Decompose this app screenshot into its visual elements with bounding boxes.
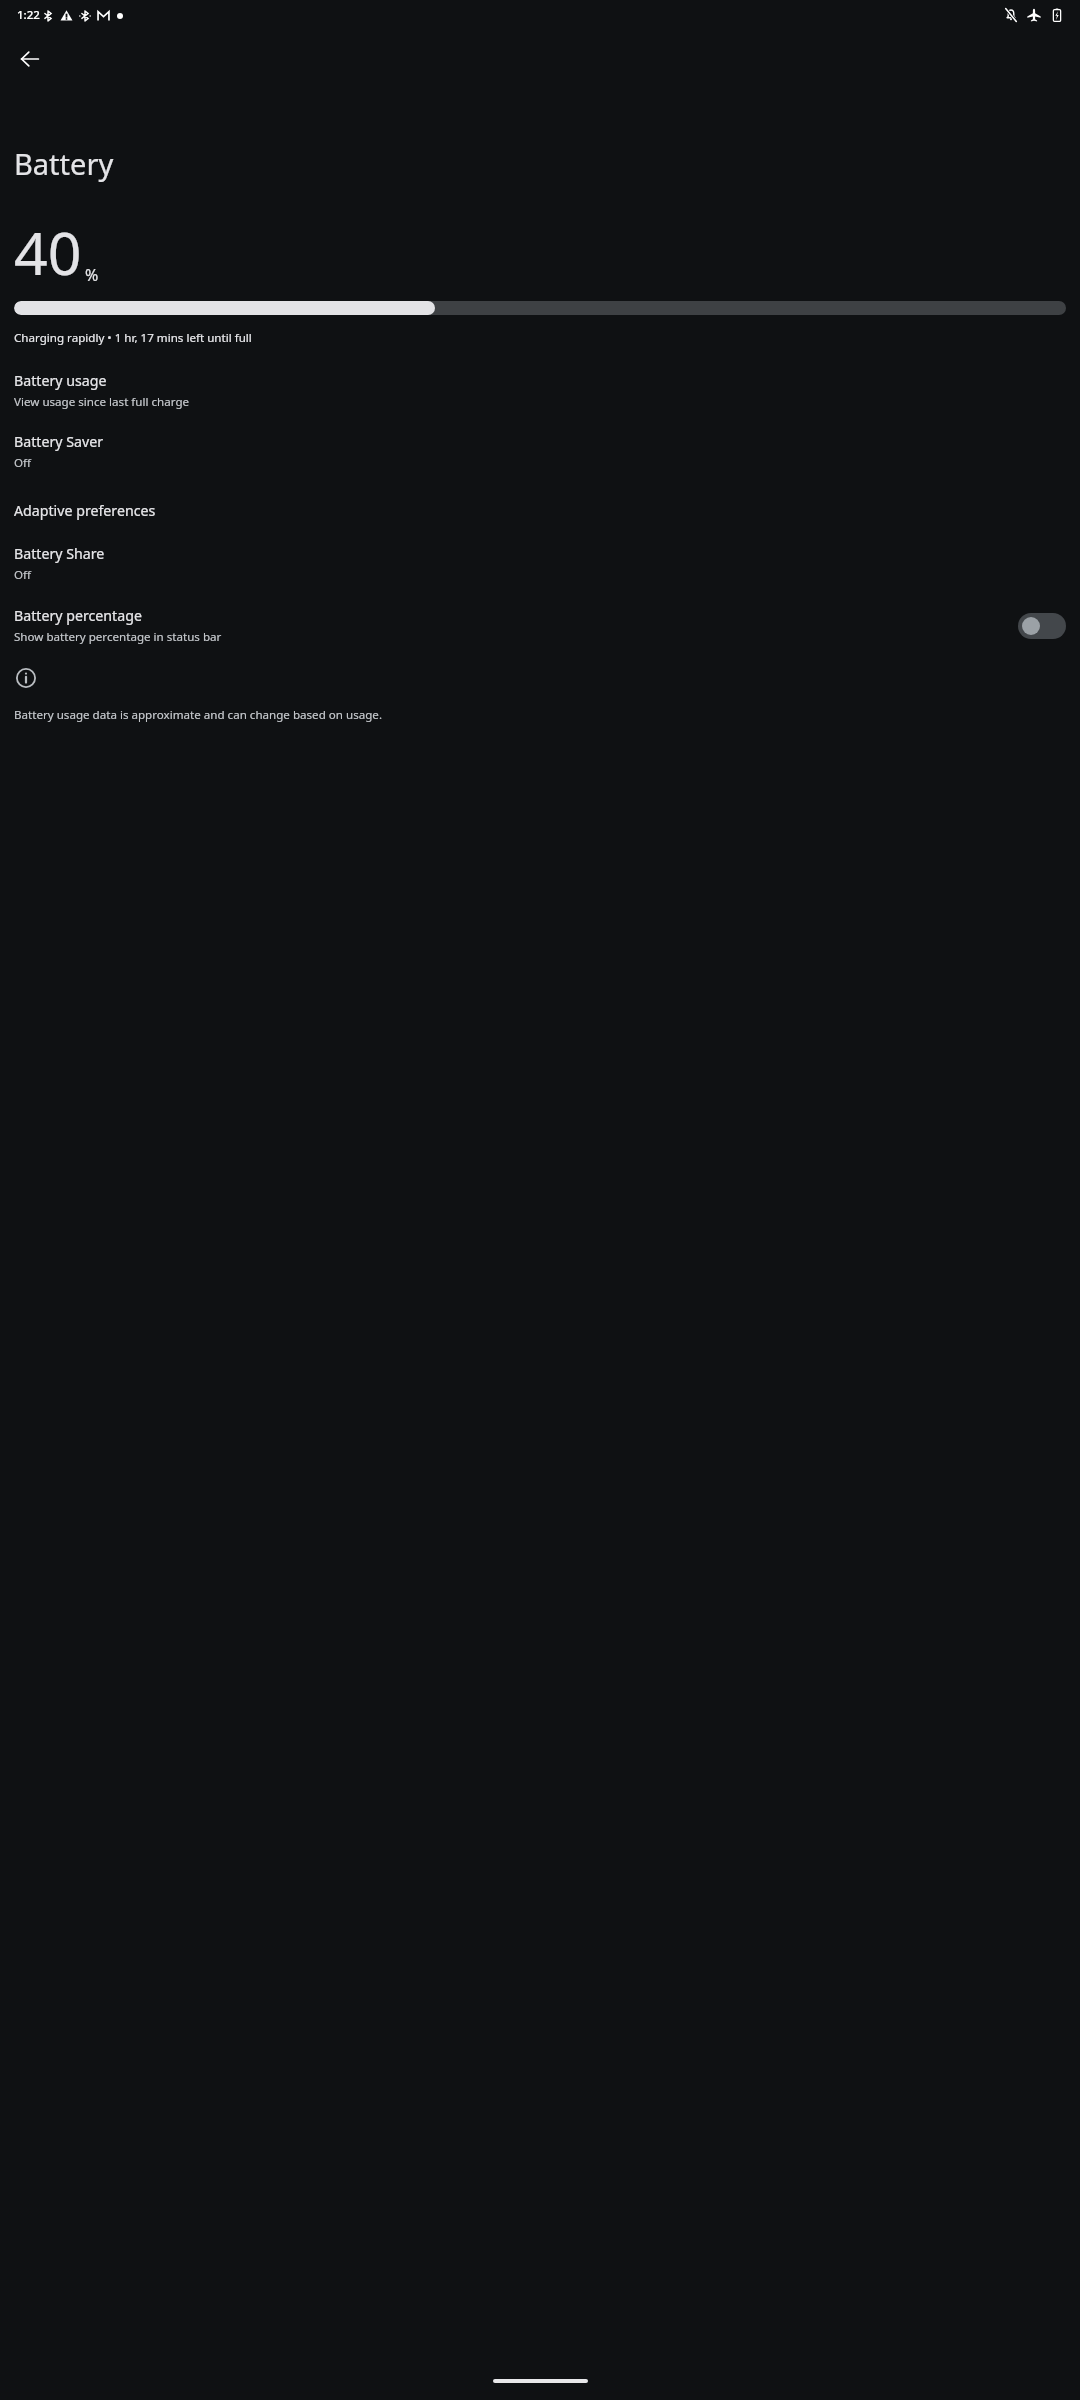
button[interactable]: Battery percentage (0, 604, 1080, 647)
staticText: Off (14, 455, 32, 471)
staticText: Battery Share (14, 544, 105, 563)
staticText: Show battery percentage in status bar (14, 629, 222, 645)
staticText: Charging rapidly • 1 hr, 17 mins left un… (14, 330, 252, 346)
staticText: Battery usage (14, 371, 107, 390)
button[interactable]: Battery percentage toggle (1018, 613, 1066, 639)
staticText: Battery usage data is approximate and ca… (14, 707, 382, 723)
button[interactable]: Battery Share (0, 542, 1080, 585)
staticText: % (85, 264, 99, 286)
staticText: 40 (14, 212, 82, 292)
button[interactable]: Battery usage (0, 369, 1080, 412)
staticText: 1:22 (17, 7, 40, 23)
button[interactable]: Back (8, 37, 52, 81)
staticText: Battery (14, 144, 114, 183)
staticText: View usage since last full charge (14, 394, 190, 410)
button[interactable]: Adaptive preferences (0, 501, 1080, 520)
staticText: Battery percentage (14, 606, 142, 625)
staticText: Battery Saver (14, 432, 104, 451)
staticText: Off (14, 567, 32, 583)
button[interactable]: Battery Saver (0, 430, 1080, 473)
